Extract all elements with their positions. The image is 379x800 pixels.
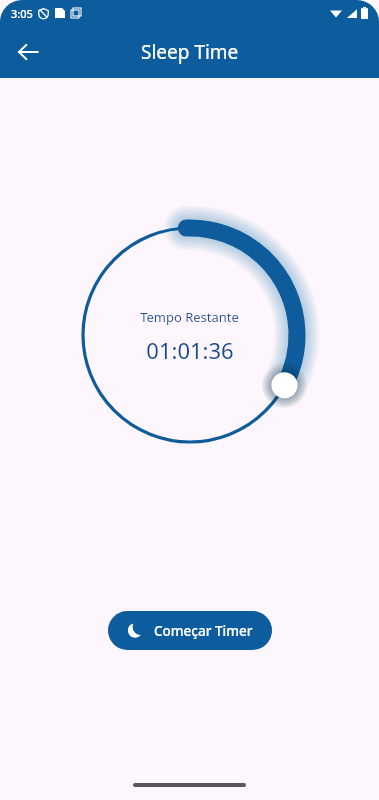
staticText: Começar Timer (154, 622, 253, 640)
staticText: 01:01:36 (146, 335, 234, 365)
button[interactable]: Começar Timer (108, 611, 272, 650)
staticText: Tempo Restante (140, 308, 239, 326)
staticText: Sleep Time (141, 39, 239, 65)
staticText: 3:05 (11, 6, 33, 21)
button[interactable]: Back (6, 30, 50, 74)
